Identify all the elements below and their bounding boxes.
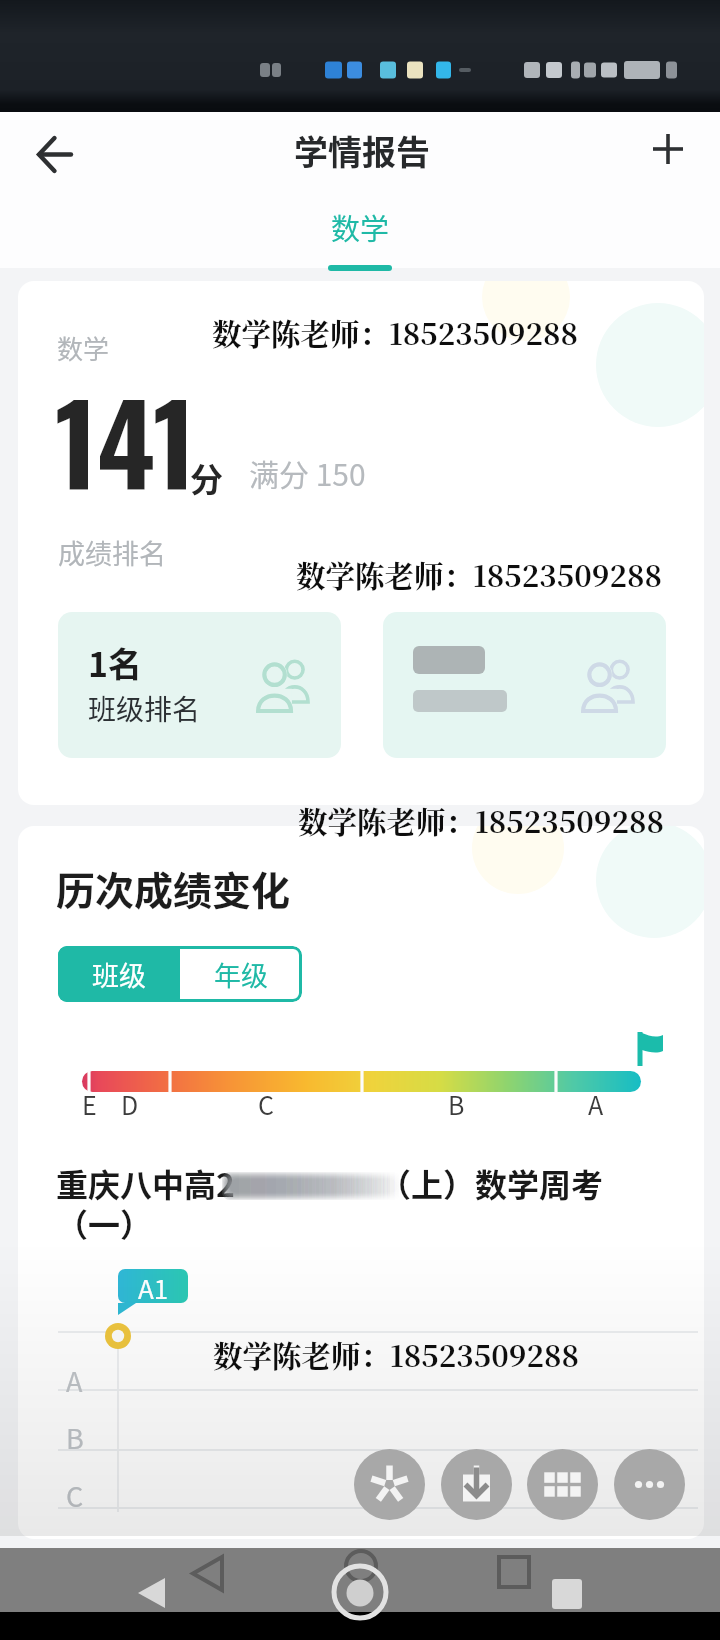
staticText: C xyxy=(258,1086,274,1122)
staticText: 数学 xyxy=(331,206,390,248)
button[interactable] xyxy=(383,612,666,758)
button[interactable]: Download xyxy=(441,1449,512,1520)
staticText: 学情报告 xyxy=(294,126,430,175)
staticText: 数学陈老师：18523509288 xyxy=(212,311,578,353)
button[interactable]: 班级 xyxy=(58,946,180,1002)
staticText: 分 xyxy=(190,454,223,502)
staticText: 数学陈老师：18523509288 xyxy=(298,799,664,841)
staticText: 班级排名 xyxy=(88,688,201,729)
staticText: 重庆八中高2 （上）数学周考 （一） xyxy=(56,1160,603,1246)
button[interactable]: Assistant xyxy=(354,1449,425,1520)
button[interactable]: More xyxy=(614,1449,685,1520)
button[interactable]: 数学 xyxy=(318,206,402,271)
staticText: 成绩排名 xyxy=(58,533,166,572)
staticText: 数学陈老师：18523509288 xyxy=(213,1333,579,1375)
staticText: B xyxy=(448,1086,465,1122)
staticText: E xyxy=(82,1086,97,1122)
staticText: 年级 xyxy=(214,955,268,994)
staticText: A xyxy=(588,1086,604,1122)
button[interactable]: Add xyxy=(631,112,705,186)
staticText: 1名 xyxy=(88,638,143,687)
staticText: 历次成绩变化 xyxy=(56,860,291,916)
staticText: 数学 xyxy=(57,329,110,367)
staticText: A1 xyxy=(138,1269,169,1303)
button[interactable]: Grid xyxy=(527,1449,598,1520)
button[interactable]: 1名 xyxy=(58,612,341,758)
staticText: D xyxy=(121,1086,139,1122)
staticText: 满分 150 xyxy=(249,451,366,494)
staticText: A xyxy=(66,1361,83,1400)
staticText: 班级 xyxy=(92,955,146,994)
staticText: 数学陈老师：18523509288 xyxy=(296,553,662,595)
button[interactable]: 年级 xyxy=(180,946,302,1002)
staticText: C xyxy=(66,1476,84,1515)
staticText: B xyxy=(66,1418,84,1457)
button[interactable]: Back xyxy=(16,116,92,192)
staticText: 141 xyxy=(55,359,196,522)
